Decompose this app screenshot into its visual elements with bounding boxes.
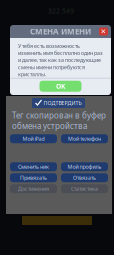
- button[interactable]: Закрыть: [99, 27, 108, 35]
- staticText: СМЕНА ИМЕНИ: [30, 26, 91, 37]
- button[interactable]: OK: [39, 81, 81, 92]
- button[interactable]: Достижения: [10, 184, 57, 193]
- staticText: Сменить ник: [18, 163, 49, 170]
- staticText: Статистика: [71, 185, 98, 192]
- staticText: У тебя есть возможность изменить имя бес…: [18, 42, 103, 78]
- staticText: Достижения: [18, 185, 49, 192]
- staticText: ✕: [100, 28, 106, 35]
- button[interactable]: Мой iPad: [10, 134, 57, 143]
- staticText: Мой iPad: [22, 135, 44, 142]
- button[interactable]: Статистика: [61, 184, 108, 193]
- button[interactable]: ПОДТВЕРДИТЬ: [32, 98, 85, 108]
- staticText: OK: [56, 82, 65, 91]
- button[interactable]: Привязать: [10, 173, 57, 182]
- button[interactable]: Сменить ник: [10, 162, 57, 171]
- staticText: Тег скопирован в буфер обмена устройства: [12, 110, 106, 131]
- staticText: 322 549: [48, 7, 74, 15]
- button[interactable]: Мой профиль: [61, 162, 108, 171]
- staticText: Мой телефон: [68, 135, 101, 142]
- staticText: ПОДТВЕРДИТЬ: [43, 99, 81, 107]
- button[interactable]: Отвязать: [61, 173, 108, 182]
- staticText: Мой профиль: [67, 163, 101, 170]
- staticText: Отвязать: [73, 174, 96, 181]
- staticText: Привязать: [20, 174, 47, 181]
- button[interactable]: Мой телефон: [61, 134, 108, 143]
